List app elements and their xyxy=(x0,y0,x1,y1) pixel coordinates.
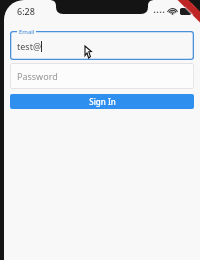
other: Debug banner xyxy=(166,0,200,34)
staticText: test@ xyxy=(17,40,41,52)
staticText: Password xyxy=(17,70,58,82)
button[interactable]: Email xyxy=(10,31,194,60)
staticText: 6:28 xyxy=(17,5,35,17)
staticText: Email xyxy=(19,28,35,36)
button[interactable]: Sign In xyxy=(10,94,194,109)
staticText: Sign In xyxy=(89,96,116,107)
button[interactable]: Password xyxy=(10,63,194,89)
